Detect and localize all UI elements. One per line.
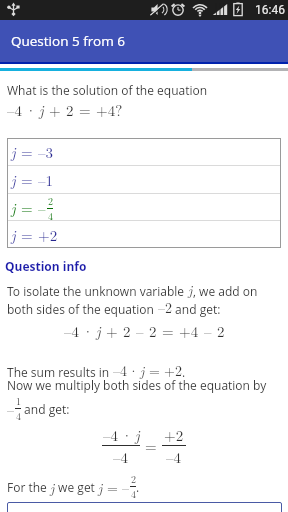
staticText: –2 xyxy=(158,297,172,317)
staticText: Question 5 from 6 xyxy=(11,32,125,50)
staticText: –1 xyxy=(38,169,54,190)
staticText: j xyxy=(98,477,103,497)
staticText: 4 xyxy=(48,209,53,220)
staticText: 2 xyxy=(149,320,157,341)
staticText: . xyxy=(136,479,140,495)
staticText: we get xyxy=(55,479,98,495)
staticText: +2 xyxy=(38,224,58,245)
staticText: and get: xyxy=(172,301,221,317)
button[interactable]: j xyxy=(7,138,281,165)
staticText: +2 xyxy=(164,360,182,380)
staticText: 2 xyxy=(217,320,225,341)
staticText: · xyxy=(121,424,133,445)
staticText: = xyxy=(21,169,33,190)
staticText: – xyxy=(122,477,129,497)
staticText: +2 xyxy=(164,424,184,445)
staticText: both sides of the equation xyxy=(7,301,158,317)
staticText: 2 xyxy=(123,320,131,341)
staticText: . xyxy=(182,364,186,380)
staticText: 16:46 xyxy=(255,3,285,17)
button[interactable]: j xyxy=(7,166,281,193)
staticText: j xyxy=(140,360,145,380)
staticText: –4 xyxy=(166,446,182,467)
staticText: j xyxy=(11,169,16,190)
staticText: –4 xyxy=(113,360,127,380)
staticText: 1 xyxy=(16,394,21,408)
staticText: j xyxy=(50,477,55,497)
staticText: +4 xyxy=(179,320,199,341)
staticText: What is the solution of the equation xyxy=(7,82,208,98)
staticText: = xyxy=(79,99,91,120)
staticText: – xyxy=(7,399,14,419)
staticText: j xyxy=(11,141,16,162)
staticText: The sum results in xyxy=(7,364,113,380)
staticText: To isolate the unknown variable xyxy=(7,283,188,299)
staticText: Question info xyxy=(5,258,87,274)
staticText: j xyxy=(188,279,193,299)
staticText: j xyxy=(11,197,16,218)
button[interactable]: j xyxy=(7,221,281,247)
staticText: 2 xyxy=(48,194,53,208)
staticText: j xyxy=(39,99,44,120)
staticText: = xyxy=(107,477,118,497)
staticText: = xyxy=(21,141,33,162)
staticText: + xyxy=(106,320,118,341)
staticText: = xyxy=(21,224,33,245)
staticText: 4 xyxy=(16,409,21,423)
staticText: –4 xyxy=(113,446,129,467)
staticText: –4 xyxy=(103,424,119,445)
staticText: – xyxy=(204,320,212,341)
button[interactable]: Question 5 from 6 xyxy=(0,20,288,62)
button[interactable] xyxy=(0,68,288,71)
staticText: 4 xyxy=(131,487,136,501)
staticText: For the xyxy=(7,479,50,495)
staticText: Now we multiply both sides of the equati… xyxy=(7,377,267,393)
staticText: – xyxy=(38,197,46,218)
staticText: + xyxy=(49,99,61,120)
staticText: +4? xyxy=(96,99,123,120)
button[interactable] xyxy=(7,502,282,512)
staticText: = xyxy=(145,435,157,456)
staticText: · xyxy=(82,320,94,341)
staticText: = xyxy=(21,197,33,218)
button[interactable]: j xyxy=(7,194,281,220)
staticText: , we add on xyxy=(193,283,258,299)
staticText: j xyxy=(11,224,16,245)
staticText: – xyxy=(136,320,144,341)
staticText: –4 xyxy=(7,99,23,120)
staticText: = xyxy=(149,360,160,380)
staticText: · xyxy=(25,99,37,120)
staticText: j xyxy=(135,424,140,445)
staticText: –3 xyxy=(38,141,54,162)
staticText: = xyxy=(162,320,174,341)
staticText: 2 xyxy=(66,99,74,120)
staticText: and get: xyxy=(21,401,70,417)
staticText: j xyxy=(96,320,101,341)
staticText: 2 xyxy=(131,472,136,486)
staticText: · xyxy=(128,360,139,380)
staticText: –4 xyxy=(64,320,80,341)
